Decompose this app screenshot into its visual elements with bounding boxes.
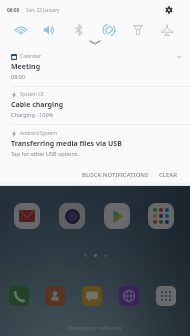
button[interactable]: Open app bbox=[82, 286, 102, 306]
staticText: Cable charging bbox=[11, 100, 64, 110]
button[interactable]: Flight mode bbox=[159, 22, 174, 37]
staticText: Emergency calls only bbox=[68, 324, 122, 331]
button[interactable]: Android System bbox=[0, 126, 190, 161]
staticText: 08:00 bbox=[11, 73, 26, 80]
button[interactable]: Open app bbox=[14, 203, 40, 229]
staticText: Transferring media files via USB bbox=[11, 139, 122, 149]
button[interactable]: Open app bbox=[148, 203, 174, 229]
button[interactable]: Auto rotate bbox=[101, 22, 116, 37]
button[interactable]: Calendar bbox=[0, 49, 190, 84]
button[interactable]: CLEAR bbox=[155, 168, 182, 182]
staticText: System UI bbox=[20, 91, 44, 98]
staticText: Calendar bbox=[20, 53, 42, 60]
button[interactable]: Settings bbox=[161, 2, 177, 18]
button[interactable]: Open app bbox=[119, 286, 139, 306]
button[interactable]: Open app bbox=[156, 286, 176, 306]
button[interactable]: Bluetooth bbox=[71, 22, 86, 37]
staticText: Tap for other USB options. bbox=[11, 150, 79, 157]
button[interactable]: Open app bbox=[59, 203, 85, 229]
button[interactable]: Open app bbox=[45, 286, 65, 306]
staticText: BLOCK NOTIFICATIONS bbox=[82, 171, 149, 179]
button[interactable]: Wi-Fi bbox=[13, 22, 28, 37]
button[interactable]: Open app bbox=[9, 286, 29, 306]
button[interactable]: System UI bbox=[0, 87, 190, 122]
button[interactable]: Open app bbox=[104, 203, 130, 229]
button[interactable]: Flashlight bbox=[130, 22, 145, 37]
staticText: CLEAR bbox=[159, 171, 178, 179]
button[interactable]: BLOCK NOTIFICATIONS bbox=[78, 168, 153, 182]
staticText: Charging · 100% bbox=[11, 111, 54, 118]
button[interactable]: Sound bbox=[41, 22, 56, 37]
staticText: 08:00 bbox=[7, 7, 20, 14]
staticText: Sun, 22 January bbox=[26, 7, 60, 13]
staticText: Meeting bbox=[11, 62, 41, 72]
staticText: Android System bbox=[20, 130, 58, 137]
